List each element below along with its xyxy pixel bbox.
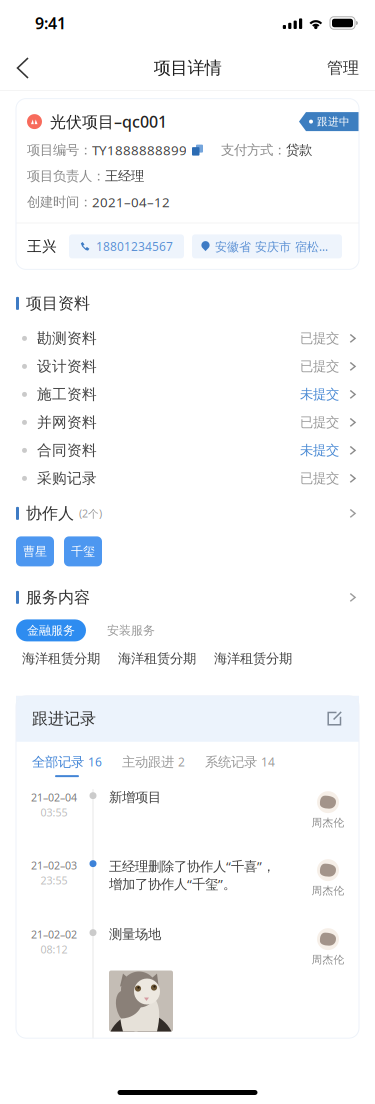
- staticText: 2021–04–12: [92, 193, 170, 211]
- staticText: 新增项目: [109, 789, 161, 806]
- staticText: 跟进中: [317, 115, 350, 128]
- staticText: (2个): [79, 506, 102, 520]
- button[interactable]: 采购记录: [0, 464, 375, 492]
- staticText: 千玺: [71, 544, 95, 559]
- button[interactable]: 设计资料: [0, 352, 375, 380]
- staticText: 协作人: [26, 504, 74, 523]
- staticText: 18801234567: [96, 238, 173, 254]
- staticText: 安装服务: [107, 623, 155, 638]
- button[interactable]: 全部记录: [32, 754, 102, 777]
- staticText: 已提交: [300, 358, 339, 375]
- staticText: 周杰伦: [311, 884, 344, 897]
- staticText: 项目详情: [153, 57, 221, 79]
- button[interactable]: 管理: [313, 47, 375, 89]
- staticText: 支付方式：: [221, 142, 286, 158]
- staticText: 管理: [327, 58, 359, 78]
- button[interactable]: 系统记录: [205, 754, 275, 777]
- staticText: 未提交: [300, 442, 339, 459]
- staticText: 勘测资料: [37, 329, 97, 347]
- staticText: 海洋租赁分期: [214, 650, 292, 667]
- staticText: 测量场地: [109, 926, 161, 943]
- staticText: 光伏项目–qc001: [50, 111, 167, 132]
- staticText: 系统记录: [205, 754, 257, 770]
- button[interactable]: 勘测资料: [0, 324, 375, 352]
- staticText: 并网资料: [37, 413, 97, 431]
- staticText: 项目编号：: [27, 142, 92, 158]
- staticText: 08:12: [40, 942, 67, 956]
- staticText: 创建时间：: [27, 194, 92, 210]
- staticText: 跟进记录: [32, 709, 96, 729]
- staticText: 贷款: [286, 142, 312, 158]
- button[interactable]: 曹星: [16, 536, 54, 566]
- staticText: 王经理删除了协作人“千喜”， 增加了协作人“千玺”。: [109, 857, 275, 893]
- staticText: 23:55: [40, 873, 67, 887]
- staticText: 合同资料: [37, 441, 97, 459]
- button[interactable]: 施工资料: [0, 380, 375, 408]
- button[interactable]: 合同资料: [0, 436, 375, 464]
- button[interactable]: 并网资料: [0, 408, 375, 436]
- staticText: 设计资料: [37, 357, 97, 375]
- staticText: 项目资料: [26, 294, 90, 313]
- button[interactable]: 千玺: [64, 536, 102, 566]
- staticText: 2: [178, 754, 185, 770]
- staticText: 海洋租赁分期: [118, 650, 196, 667]
- staticText: TY1888888899: [92, 141, 187, 159]
- staticText: 21–02–03: [31, 858, 77, 872]
- staticText: 海洋租赁分期: [22, 650, 100, 667]
- button[interactable]: 金融服务: [16, 619, 86, 641]
- staticText: 14: [261, 754, 275, 770]
- staticText: 金融服务: [27, 623, 75, 638]
- staticText: 21–02–04: [31, 790, 77, 804]
- staticText: 周杰伦: [311, 816, 344, 829]
- staticText: 已提交: [300, 330, 339, 347]
- staticText: 王经理: [105, 168, 144, 184]
- button[interactable]: 主动跟进: [122, 754, 185, 777]
- staticText: 曹星: [23, 544, 47, 559]
- staticText: 已提交: [300, 414, 339, 431]
- staticText: 采购记录: [37, 469, 97, 487]
- staticText: 施工资料: [37, 385, 97, 403]
- button[interactable]: 返回: [0, 46, 43, 90]
- button[interactable]: 服务内容: [0, 586, 375, 608]
- staticText: 主动跟进: [122, 754, 174, 770]
- staticText: 21–02–02: [31, 927, 77, 941]
- button[interactable]: 18801234567: [69, 234, 184, 258]
- staticText: 03:55: [40, 805, 67, 819]
- staticText: 服务内容: [26, 588, 90, 607]
- button[interactable]: 安徽省 安庆市 宿松县民主...: [192, 234, 342, 258]
- staticText: 安徽省 安庆市 宿松县民主...: [215, 238, 333, 254]
- staticText: 项目负责人：: [27, 168, 105, 184]
- staticText: 王兴: [27, 237, 57, 255]
- staticText: 周杰伦: [311, 953, 344, 966]
- button[interactable]: 安装服务: [96, 619, 166, 641]
- staticText: 未提交: [300, 386, 339, 403]
- staticText: 9:41: [35, 12, 66, 34]
- button[interactable]: 协作人: [0, 502, 375, 524]
- button[interactable]: 编辑: [326, 710, 343, 727]
- staticText: 全部记录: [32, 754, 84, 770]
- staticText: 已提交: [300, 470, 339, 487]
- staticText: 16: [88, 754, 102, 770]
